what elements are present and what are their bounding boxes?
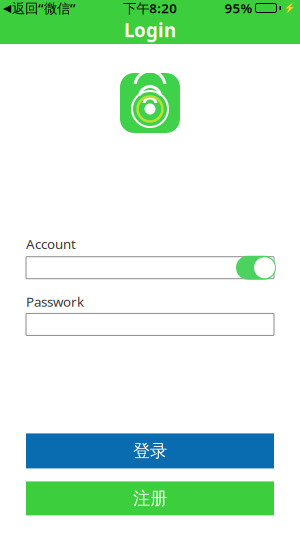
- staticText: Login: [124, 18, 176, 42]
- button[interactable]: Show account: [236, 256, 276, 280]
- button[interactable]: Password field: [26, 313, 274, 335]
- staticText: Passwork: [26, 293, 84, 310]
- staticText: 返回“微信”: [12, 0, 76, 17]
- staticText: 注册: [133, 488, 167, 509]
- staticText: Account: [26, 235, 76, 253]
- button[interactable]: 登录: [26, 433, 274, 468]
- staticText: 95%: [224, 0, 252, 17]
- staticText: ◀: [3, 2, 11, 14]
- button[interactable]: 注册: [26, 481, 274, 515]
- staticText: ⚡: [284, 3, 296, 13]
- staticText: 下午8:20: [123, 0, 177, 17]
- button[interactable]: ◀: [0, 0, 76, 17]
- staticText: 登录: [133, 440, 167, 462]
